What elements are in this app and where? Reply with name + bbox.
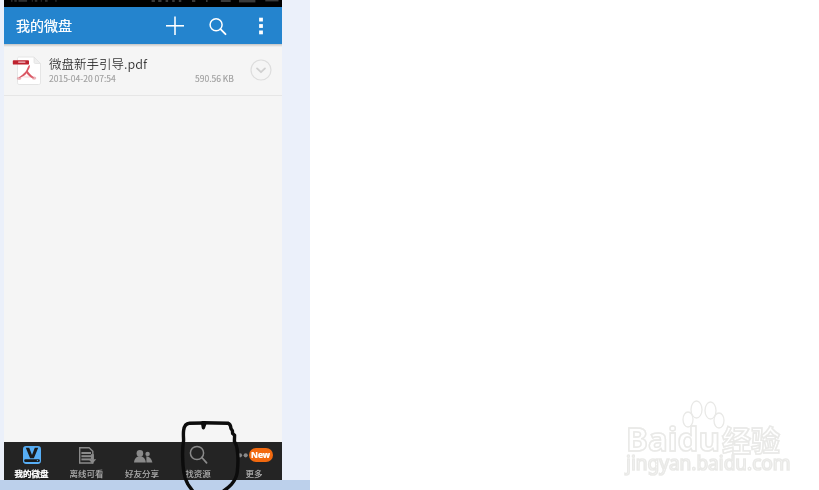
button[interactable]: New <box>226 442 282 480</box>
staticText: 590.56 KB <box>195 72 234 84</box>
staticText: jingyan.baidu.com <box>626 450 791 476</box>
button[interactable]: Add <box>161 7 189 44</box>
button[interactable]: 好友分享 <box>114 442 170 480</box>
staticText: 找资源 <box>170 467 226 479</box>
staticText: 我的微盘 <box>4 467 59 479</box>
button[interactable]: Search <box>204 7 232 44</box>
staticText: 我的微盘 <box>16 15 72 35</box>
button[interactable]: 离线可看 <box>59 442 114 480</box>
staticText: 更多 <box>226 467 282 479</box>
staticText: 离线可看 <box>59 467 114 479</box>
button[interactable]: More options <box>247 7 275 44</box>
button[interactable]: 找资源 <box>170 442 226 480</box>
button[interactable]: Expand <box>247 56 275 84</box>
staticText: 好友分享 <box>114 467 170 479</box>
staticText: New <box>251 449 271 461</box>
staticText: 经验 <box>722 418 781 460</box>
staticText: Baidu <box>626 416 720 461</box>
button[interactable]: 我的微盘 <box>4 442 59 480</box>
staticText: 2015-04-20 07:54 <box>49 72 116 84</box>
staticText: 微盘新手引导.pdf <box>49 54 148 72</box>
button[interactable]: 微盘新手引导.pdf <box>4 46 282 96</box>
